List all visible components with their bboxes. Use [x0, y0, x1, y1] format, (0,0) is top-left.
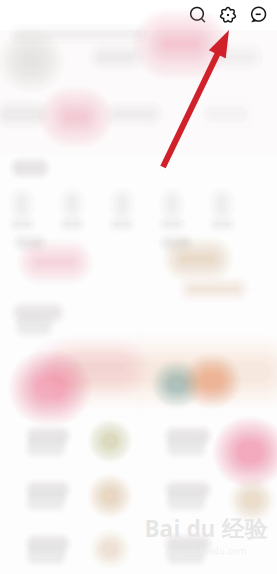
button[interactable] — [139, 242, 277, 288]
button[interactable] — [0, 242, 137, 288]
button[interactable]: Search — [183, 0, 213, 30]
button[interactable] — [0, 290, 137, 415]
button[interactable] — [0, 30, 277, 154]
button[interactable]: Settings — [213, 0, 243, 30]
button[interactable] — [0, 417, 137, 469]
button[interactable] — [139, 290, 277, 415]
button[interactable] — [0, 471, 137, 523]
staticText: jingyan.baidu.com — [165, 544, 247, 557]
button[interactable] — [139, 417, 277, 469]
button[interactable] — [139, 525, 277, 574]
button[interactable] — [139, 471, 277, 523]
button[interactable]: Messages — [243, 0, 273, 30]
staticText: Bai du 经验 — [144, 513, 267, 543]
button[interactable] — [0, 525, 137, 574]
button[interactable] — [0, 156, 277, 240]
